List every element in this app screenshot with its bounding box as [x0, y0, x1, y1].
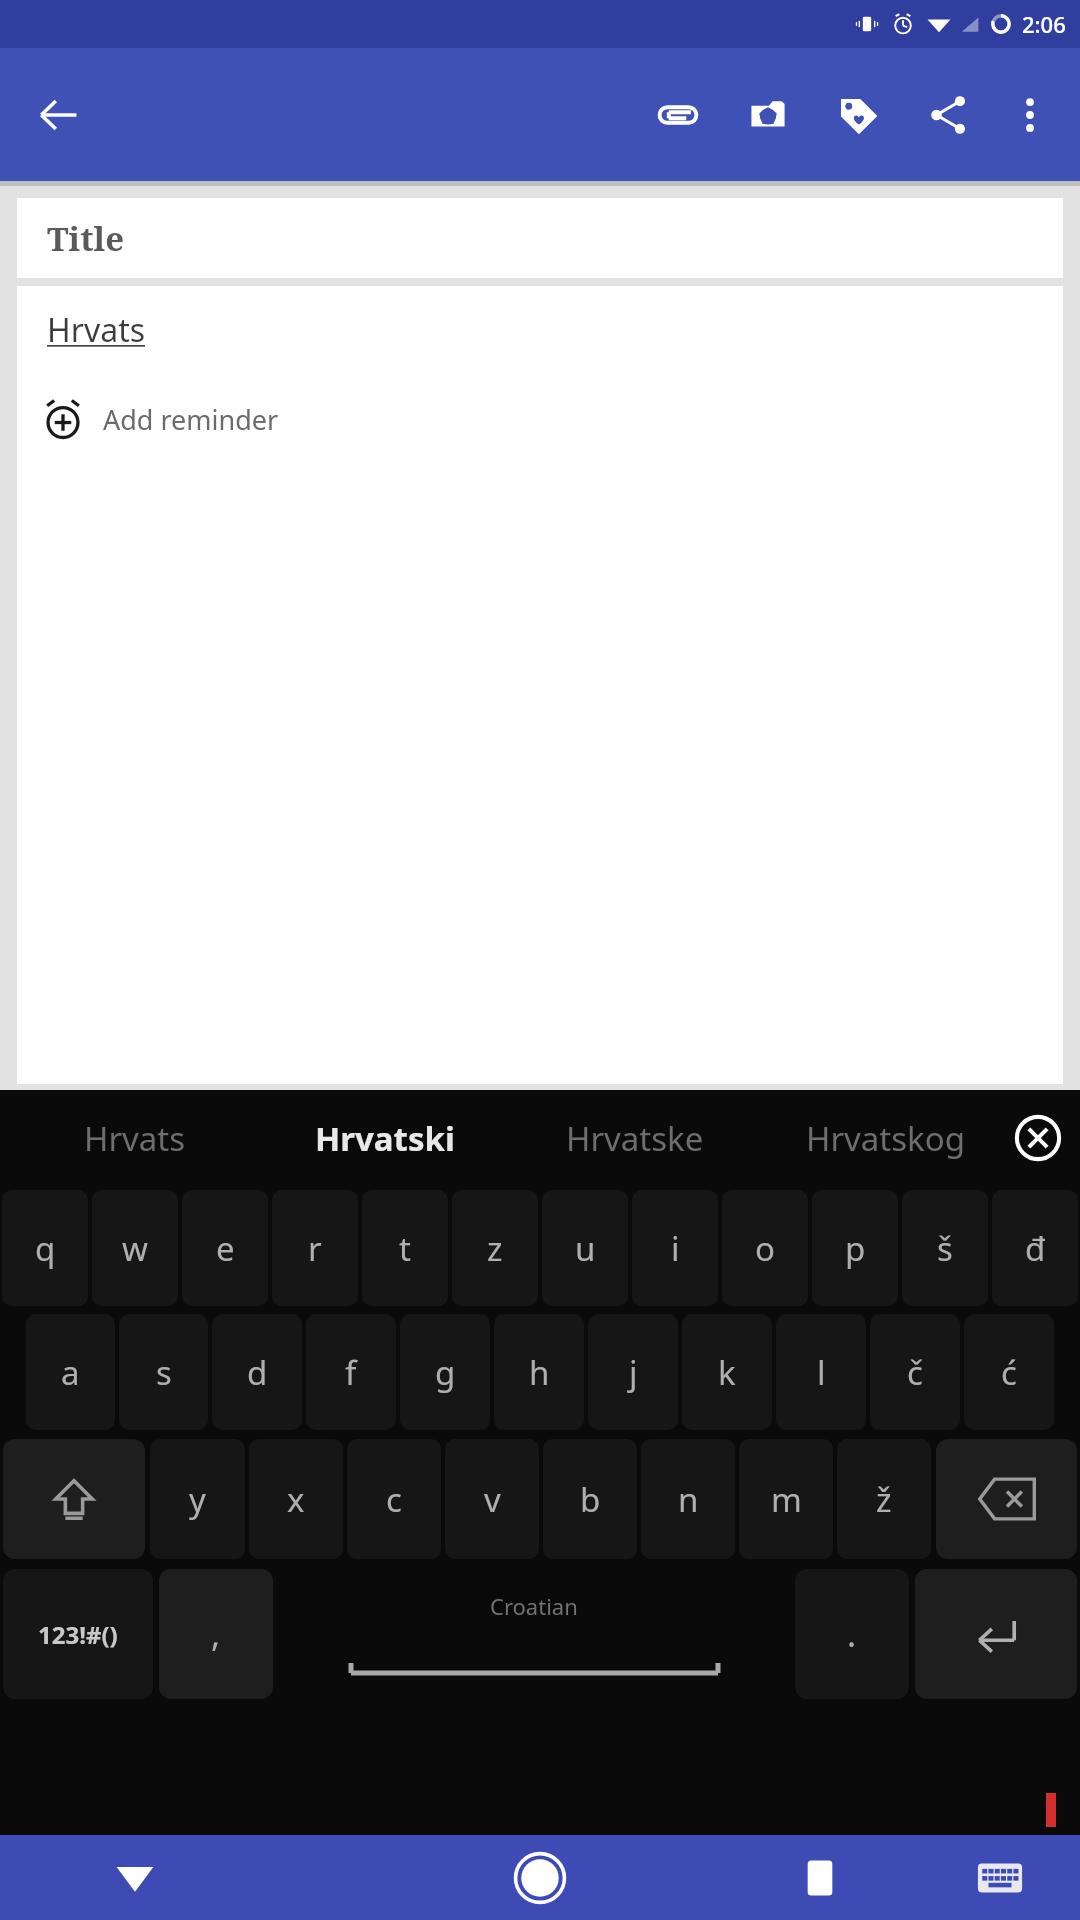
- button[interactable]: l: [776, 1314, 866, 1430]
- button[interactable]: e: [182, 1190, 268, 1306]
- button[interactable]: u: [542, 1190, 628, 1306]
- button[interactable]: č: [870, 1314, 960, 1430]
- staticText: ,: [211, 1611, 221, 1657]
- button[interactable]: Hrvats: [47, 308, 146, 352]
- staticText: q: [35, 1226, 56, 1271]
- button[interactable]: Hrvatski: [260, 1090, 510, 1186]
- staticText: č: [907, 1350, 923, 1395]
- button[interactable]: ž: [837, 1439, 931, 1559]
- button[interactable]: Switch keyboard: [950, 1835, 1050, 1920]
- staticText: k: [718, 1350, 736, 1395]
- staticText: .: [847, 1611, 857, 1657]
- button[interactable]: q: [2, 1190, 88, 1306]
- button[interactable]: r: [272, 1190, 358, 1306]
- button[interactable]: š: [902, 1190, 988, 1306]
- button[interactable]: Title: [17, 198, 1063, 278]
- button[interactable]: x: [249, 1439, 343, 1559]
- button[interactable]: More options: [992, 77, 1068, 153]
- button[interactable]: w: [92, 1190, 178, 1306]
- staticText: 2:06: [1022, 9, 1066, 39]
- staticText: v: [484, 1477, 501, 1522]
- staticText: g: [435, 1350, 456, 1395]
- staticText: h: [529, 1350, 550, 1395]
- button[interactable]: Add reminder: [41, 397, 279, 441]
- button[interactable]: c: [347, 1439, 441, 1559]
- staticText: Croatian: [490, 1591, 578, 1621]
- staticText: y: [189, 1477, 206, 1522]
- button[interactable]: Hrvatske: [510, 1090, 760, 1186]
- button[interactable]: b: [543, 1439, 637, 1559]
- button[interactable]: v: [445, 1439, 539, 1559]
- staticText: Title: [47, 216, 125, 261]
- button[interactable]: z: [452, 1190, 538, 1306]
- button[interactable]: 123!#(): [3, 1569, 153, 1699]
- button[interactable]: y: [150, 1439, 245, 1559]
- button[interactable]: k: [682, 1314, 772, 1430]
- button[interactable]: Shift: [3, 1439, 145, 1559]
- staticText: j: [629, 1350, 638, 1395]
- button[interactable]: d: [212, 1314, 302, 1430]
- button[interactable]: h: [494, 1314, 584, 1430]
- button[interactable]: o: [722, 1190, 808, 1306]
- staticText: ć: [1001, 1350, 1017, 1395]
- staticText: w: [122, 1226, 148, 1271]
- staticText: e: [216, 1226, 235, 1271]
- staticText: š: [937, 1226, 953, 1271]
- button[interactable]: f: [306, 1314, 396, 1430]
- button[interactable]: Backspace: [936, 1439, 1077, 1559]
- staticText: t: [399, 1226, 411, 1271]
- button[interactable]: Space: [279, 1569, 789, 1699]
- button[interactable]: n: [641, 1439, 735, 1559]
- staticText: ž: [876, 1477, 892, 1522]
- button[interactable]: Attach: [640, 77, 716, 153]
- button[interactable]: Comma: [159, 1569, 273, 1699]
- staticText: i: [671, 1226, 680, 1271]
- button[interactable]: đ: [992, 1190, 1078, 1306]
- staticText: x: [287, 1477, 305, 1522]
- button[interactable]: ć: [964, 1314, 1054, 1430]
- button[interactable]: Recents: [720, 1835, 920, 1920]
- staticText: r: [308, 1226, 322, 1271]
- button[interactable]: Period: [795, 1569, 909, 1699]
- button[interactable]: Home: [405, 1835, 675, 1920]
- staticText: n: [678, 1477, 699, 1522]
- staticText: Hrvats: [84, 1116, 186, 1161]
- staticText: u: [575, 1226, 596, 1271]
- staticText: Hrvatski: [315, 1116, 455, 1161]
- button[interactable]: Labels: [820, 77, 896, 153]
- staticText: a: [61, 1350, 80, 1395]
- staticText: o: [755, 1226, 775, 1271]
- staticText: s: [156, 1350, 172, 1395]
- button[interactable]: Close suggestions: [1008, 1108, 1068, 1168]
- button[interactable]: g: [400, 1314, 490, 1430]
- staticText: p: [845, 1226, 866, 1271]
- button[interactable]: j: [588, 1314, 678, 1430]
- staticText: l: [817, 1350, 826, 1395]
- staticText: c: [386, 1477, 402, 1522]
- button[interactable]: Share: [910, 77, 986, 153]
- button[interactable]: s: [119, 1314, 208, 1430]
- button[interactable]: i: [632, 1190, 718, 1306]
- button[interactable]: Back: [22, 79, 94, 151]
- staticText: b: [580, 1477, 601, 1522]
- button[interactable]: Hrvats: [10, 1090, 260, 1186]
- staticText: m: [771, 1477, 802, 1522]
- staticText: Hrvatske: [566, 1116, 704, 1161]
- staticText: z: [487, 1226, 503, 1271]
- button[interactable]: Hide keyboard: [0, 1835, 270, 1920]
- staticText: d: [247, 1350, 268, 1395]
- staticText: 123!#(): [38, 1618, 118, 1651]
- button[interactable]: p: [812, 1190, 898, 1306]
- button[interactable]: Add to folder: [730, 77, 806, 153]
- staticText: đ: [1025, 1226, 1046, 1271]
- staticText: Hrvatskog: [806, 1116, 965, 1161]
- button[interactable]: a: [26, 1314, 115, 1430]
- staticText: f: [345, 1350, 357, 1395]
- button[interactable]: Hrvatskog: [760, 1090, 1010, 1186]
- button[interactable]: m: [739, 1439, 833, 1559]
- button[interactable]: t: [362, 1190, 448, 1306]
- staticText: Add reminder: [103, 401, 279, 438]
- button[interactable]: Enter: [915, 1569, 1077, 1699]
